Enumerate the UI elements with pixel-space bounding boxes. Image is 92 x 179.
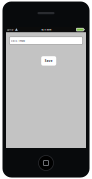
staticText: Save <box>45 59 53 63</box>
button[interactable]: Save <box>41 56 56 66</box>
staticText: Carrier <box>7 28 14 31</box>
staticText: Hello, iPhone <box>11 39 25 42</box>
button[interactable]: Hello, iPhone <box>9 37 83 44</box>
staticText: 10:11 AM <box>41 28 51 31</box>
